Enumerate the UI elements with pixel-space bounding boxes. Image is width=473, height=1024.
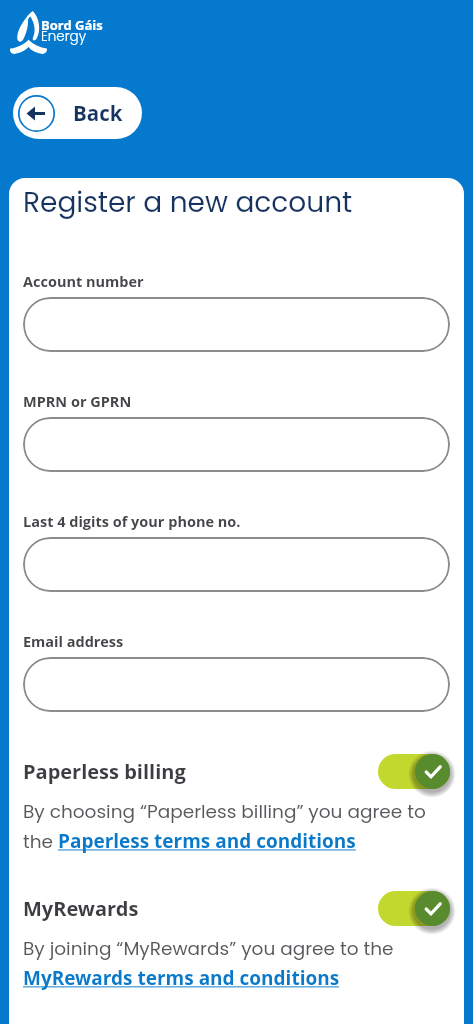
staticText: Email address xyxy=(23,632,124,652)
staticText: MPRN or GPRN xyxy=(23,392,132,412)
button[interactable] xyxy=(23,537,450,592)
button[interactable]: By choosing “Paperless billing” you agre… xyxy=(23,799,450,855)
button[interactable] xyxy=(23,297,450,352)
button[interactable] xyxy=(23,657,450,712)
staticText: Energy xyxy=(41,27,87,46)
staticText: Bord Gáis xyxy=(41,16,103,34)
staticText: Last 4 digits of your phone no. xyxy=(23,512,241,532)
button[interactable] xyxy=(23,417,450,472)
button[interactable]: By joining “MyRewards” you agree to the … xyxy=(23,936,450,991)
button[interactable]: Toggle, on xyxy=(378,753,450,789)
staticText: Register a new account xyxy=(23,183,353,222)
button[interactable]: Back xyxy=(13,87,142,139)
staticText: MyRewards xyxy=(23,895,378,922)
staticText: Back xyxy=(73,99,123,127)
button[interactable]: Toggle, on xyxy=(378,890,450,926)
staticText: Account number xyxy=(23,272,144,292)
staticText: Paperless billing xyxy=(23,758,378,785)
